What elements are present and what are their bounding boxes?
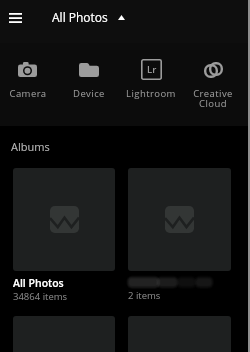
button[interactable]: All Photos <box>13 168 115 303</box>
staticText: Lightroom <box>126 87 176 100</box>
button[interactable]: Camera <box>0 43 58 100</box>
staticText: Camera <box>9 87 47 100</box>
button[interactable]: Creative Cloud <box>182 43 244 110</box>
staticText: Lr <box>147 63 157 76</box>
staticText: All Photos <box>52 9 108 25</box>
staticText: 2 items <box>128 289 161 302</box>
staticText: Albums <box>11 139 50 154</box>
button[interactable]: Device <box>58 43 120 100</box>
button[interactable]: All Photos <box>44 5 133 29</box>
staticText: All Photos <box>13 276 64 290</box>
staticText: 34864 items <box>13 290 68 303</box>
staticText: Device <box>73 87 105 100</box>
button[interactable]: Lr <box>120 43 182 100</box>
button[interactable]: Open navigation menu <box>0 0 31 36</box>
button[interactable]: 2 items <box>128 168 231 302</box>
staticText: Creative Cloud <box>193 87 233 110</box>
